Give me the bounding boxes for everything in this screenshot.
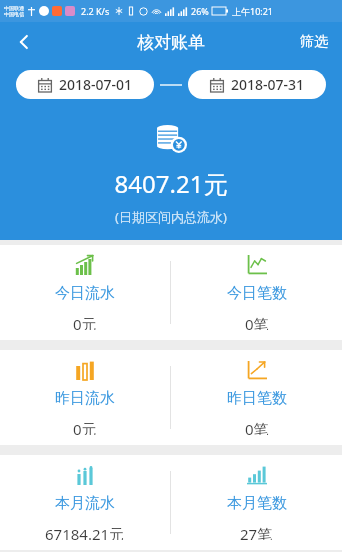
staticText: 27笔 (240, 524, 273, 540)
staticText: 0元 (73, 419, 97, 435)
staticText: 0元 (73, 314, 97, 330)
button[interactable]: 返回 (6, 24, 42, 60)
staticText: 0笔 (245, 314, 269, 330)
staticText: 本月流水 (55, 494, 115, 513)
staticText: 昨日流水 (55, 389, 115, 408)
button[interactable]: 本月流水 (0, 455, 170, 550)
staticText: 0笔 (245, 419, 269, 435)
button[interactable]: 今日流水 (0, 245, 170, 340)
staticText: 今日笔数 (227, 284, 287, 303)
button[interactable]: 本月笔数 (171, 455, 342, 550)
button[interactable]: 昨日笔数 (171, 350, 342, 445)
staticText: 昨日笔数 (227, 389, 287, 408)
staticText: 2018-07-01 (59, 75, 133, 94)
staticText: 26% (191, 5, 209, 17)
staticText: 67184.21元 (45, 524, 125, 540)
staticText: 中国电信 (4, 11, 24, 17)
button[interactable]: 筛选 (286, 25, 342, 59)
staticText: 2018-07-31 (231, 75, 305, 94)
staticText: (日期区间内总流水) (0, 208, 342, 226)
staticText: 8407.21元 (0, 167, 342, 200)
staticText: 上午10:21 (232, 5, 274, 17)
button[interactable]: 今日笔数 (171, 245, 342, 340)
staticText: 本月笔数 (227, 494, 287, 513)
staticText: 2.2 K/s (81, 5, 110, 17)
staticText: 筛选 (300, 33, 328, 51)
staticText: 中国联通 (4, 5, 24, 11)
button[interactable]: 昨日流水 (0, 350, 170, 445)
staticText: 今日流水 (55, 284, 115, 303)
button[interactable]: 2018-07-01 (16, 70, 154, 99)
button[interactable]: 2018-07-31 (188, 70, 326, 99)
staticText: 核对账单 (137, 32, 205, 53)
